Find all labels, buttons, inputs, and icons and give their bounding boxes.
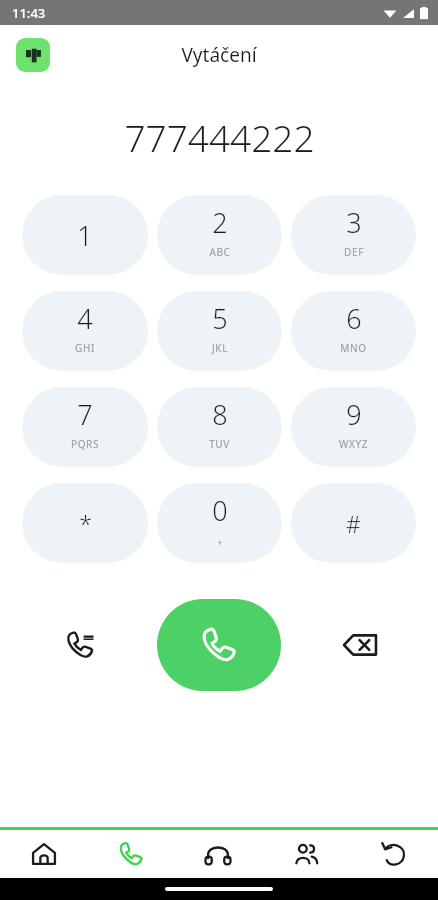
button[interactable]: 9 [291, 387, 416, 467]
button[interactable]: 3 [291, 195, 416, 275]
staticText: # [346, 508, 361, 539]
staticText: 5 [212, 300, 228, 337]
button[interactable]: 6 [291, 291, 416, 371]
button[interactable]: Home [0, 830, 87, 878]
button[interactable]: 8 [157, 387, 282, 467]
button[interactable]: History [350, 830, 438, 878]
staticText: GHI [75, 341, 95, 355]
button[interactable]: Voicemail [174, 830, 262, 878]
staticText: 9 [346, 396, 362, 433]
staticText: + [217, 537, 223, 548]
button[interactable]: Dialer [87, 830, 174, 878]
staticText: ABC [209, 245, 231, 259]
staticText: 6 [346, 300, 362, 337]
staticText: 11:43 [12, 4, 46, 22]
staticText: 2 [212, 204, 228, 241]
staticText: WXYZ [339, 437, 368, 451]
button[interactable]: 5 [157, 291, 282, 371]
button[interactable]: 7 [22, 387, 148, 467]
button[interactable]: Call [157, 599, 281, 691]
staticText: 1 [77, 217, 93, 254]
staticText: * [79, 508, 92, 539]
staticText: 777444222 [124, 112, 315, 162]
staticText: Vytáčení [181, 42, 257, 68]
staticText: JKL [212, 341, 228, 355]
button[interactable]: 2 [157, 195, 282, 275]
button[interactable]: Contacts [262, 830, 350, 878]
button[interactable]: * [22, 483, 148, 563]
button[interactable]: PBX call [52, 617, 108, 673]
staticText: 3 [346, 204, 362, 241]
button[interactable]: Backspace [332, 617, 388, 673]
staticText: 4 [77, 300, 93, 337]
staticText: TUV [209, 437, 230, 451]
staticText: MNO [340, 341, 367, 355]
staticText: 7 [77, 396, 93, 433]
button[interactable]: 4 [22, 291, 148, 371]
button[interactable]: 0 [157, 483, 282, 563]
button[interactable]: 1 [22, 195, 148, 275]
button[interactable]: # [291, 483, 416, 563]
staticText: DEF [344, 245, 364, 259]
staticText: 8 [212, 396, 228, 433]
button[interactable]: App icon [16, 38, 50, 72]
staticText: PQRS [71, 437, 99, 451]
staticText: 0 [212, 492, 228, 529]
